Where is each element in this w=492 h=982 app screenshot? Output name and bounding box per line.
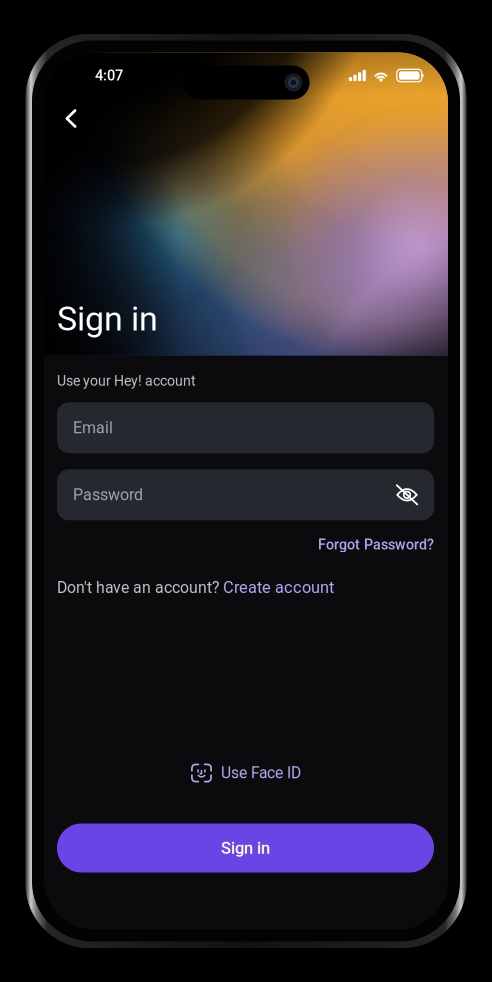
staticText: Password <box>73 485 143 504</box>
button[interactable]: Email <box>57 402 434 453</box>
staticText: Use your Hey! account <box>57 373 196 389</box>
staticText: Don't have an account? <box>57 578 223 597</box>
staticText: Create account <box>223 578 334 597</box>
button[interactable]: Forgot Password? <box>318 536 434 553</box>
staticText: Email <box>73 418 113 437</box>
button[interactable]: Use Face ID <box>185 757 307 788</box>
staticText: Sign in <box>57 299 158 339</box>
button[interactable]: Sign in <box>57 823 434 872</box>
button[interactable]: Create account <box>223 578 334 597</box>
staticText: Use Face ID <box>221 764 301 782</box>
staticText: 4:07 <box>95 67 123 84</box>
button[interactable]: Back <box>51 98 91 138</box>
staticText: Sign in <box>221 838 270 858</box>
staticText: Forgot Password? <box>318 536 434 553</box>
button[interactable]: Show password <box>385 473 429 517</box>
